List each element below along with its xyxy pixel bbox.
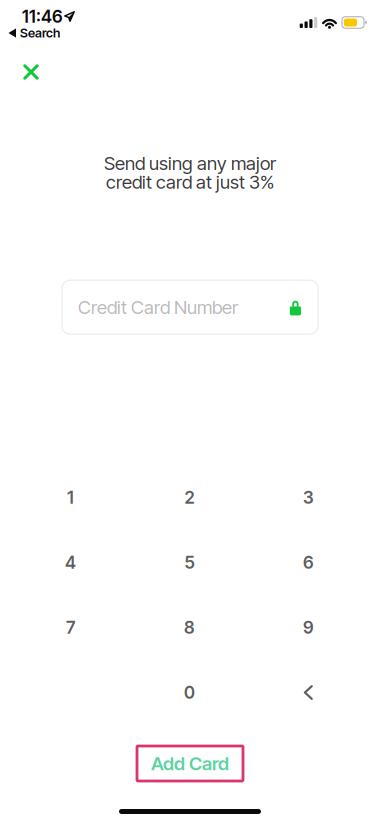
staticText: 6 [303, 552, 314, 573]
staticText: 7 [66, 617, 75, 638]
button[interactable]: 7 [11, 595, 130, 660]
staticText: Add Card [151, 752, 229, 775]
staticText: 1 [67, 487, 74, 508]
staticText: 2 [184, 487, 194, 508]
staticText: 9 [303, 617, 314, 638]
staticText: Search [20, 25, 60, 41]
button[interactable]: 4 [11, 530, 130, 595]
staticText: Credit Card Number [78, 296, 238, 318]
staticText: 8 [184, 617, 195, 638]
staticText: 0 [184, 682, 195, 703]
button[interactable]: 3 [249, 465, 368, 530]
button[interactable]: 9 [249, 595, 368, 660]
button[interactable]: 1 [11, 465, 130, 530]
staticText: 5 [184, 552, 194, 573]
staticText: Send using any major [104, 152, 276, 175]
button[interactable]: 6 [249, 530, 368, 595]
staticText: 3 [303, 487, 314, 508]
button[interactable]: 0 [130, 660, 249, 725]
button[interactable]: 2 [130, 465, 249, 530]
button[interactable]: 8 [130, 595, 249, 660]
button[interactable]: Close [9, 52, 53, 92]
staticText: 11:46 [22, 6, 63, 27]
staticText: credit card at just 3% [106, 171, 274, 193]
button[interactable]: 5 [130, 530, 249, 595]
button[interactable]: Search [0, 26, 380, 40]
button[interactable]: Delete [249, 660, 368, 725]
staticText: 4 [65, 552, 76, 573]
button[interactable]: Add Card [137, 746, 243, 781]
